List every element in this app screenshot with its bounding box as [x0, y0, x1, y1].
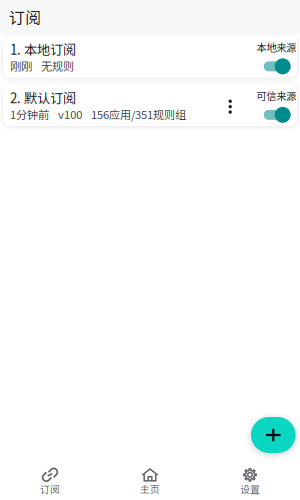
button[interactable]: 设置 [200, 450, 300, 500]
staticText: 可信来源 [256, 88, 296, 103]
button[interactable]: 1. 本地订阅 [3, 35, 297, 77]
staticText: 刚刚 无规则 [10, 57, 74, 74]
staticText: 设置 [240, 482, 260, 496]
button[interactable]: More options [219, 92, 241, 122]
button[interactable]: 主页 [100, 450, 200, 500]
button[interactable]: Add subscription [251, 417, 296, 453]
button[interactable]: 可信来源 [256, 88, 296, 123]
staticText: 1分钟前 v100 156应用/351规则组 [10, 106, 186, 122]
button[interactable]: 订阅 [0, 450, 100, 500]
staticText: 2. 默认订阅 [10, 88, 76, 107]
staticText: 1. 本地订阅 [10, 39, 76, 58]
staticText: 订阅 [9, 5, 41, 29]
staticText: 本地来源 [256, 40, 296, 54]
button[interactable]: 2. 默认订阅 [3, 84, 297, 126]
staticText: 主页 [140, 481, 160, 496]
staticText: 订阅 [40, 482, 60, 496]
button[interactable]: 本地来源 [256, 40, 296, 74]
